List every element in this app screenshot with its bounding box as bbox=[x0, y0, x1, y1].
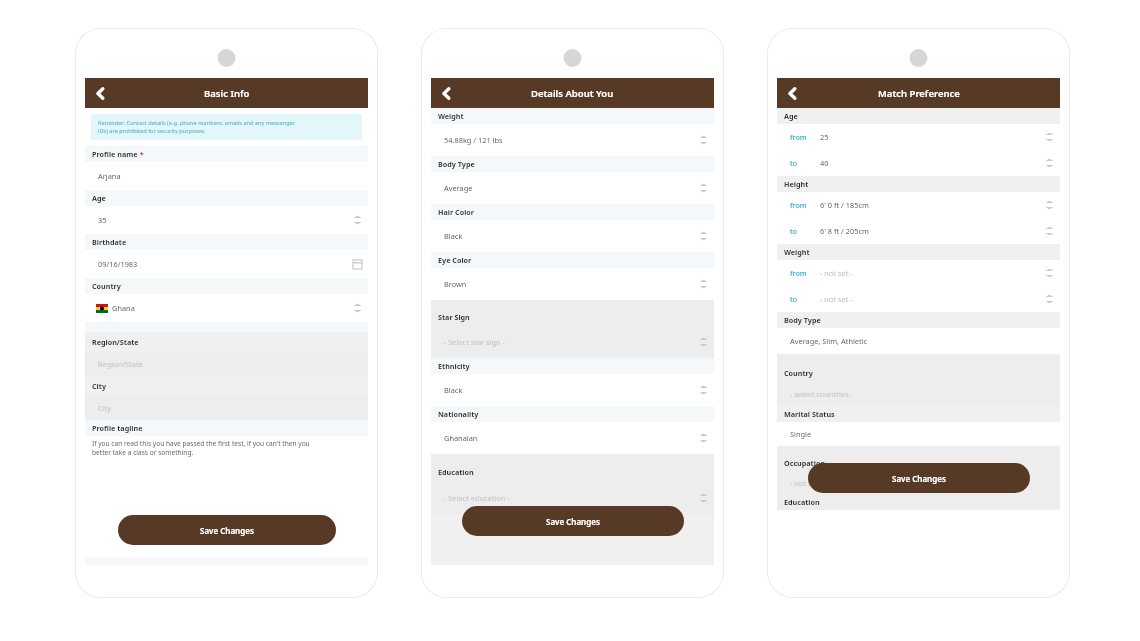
staticText: - Select star sign - bbox=[444, 337, 699, 347]
staticText: 25 bbox=[820, 132, 1045, 142]
staticText: Save Changes bbox=[892, 473, 946, 484]
staticText: Birthdate bbox=[92, 237, 127, 247]
staticText: - not set - bbox=[790, 478, 1054, 488]
staticText: City bbox=[92, 381, 106, 391]
staticText: Save Changes bbox=[546, 516, 600, 527]
button[interactable]: Back bbox=[85, 78, 115, 108]
staticText: Eye Color bbox=[438, 255, 472, 265]
staticText: Country bbox=[92, 281, 121, 291]
button[interactable]: Back bbox=[777, 78, 807, 108]
staticText: - not set - bbox=[820, 268, 1045, 278]
button[interactable]: - Select star sign - bbox=[431, 326, 714, 358]
button[interactable]: Ghana bbox=[85, 294, 368, 322]
staticText: Match Preference bbox=[878, 87, 960, 100]
button[interactable]: Save Changes bbox=[462, 506, 684, 536]
staticText: Arjana bbox=[98, 171, 362, 181]
staticText: Height bbox=[784, 179, 809, 189]
staticText: - Select education - bbox=[444, 493, 699, 503]
staticText: Ghana bbox=[112, 303, 353, 313]
staticText: Hair Color bbox=[438, 207, 474, 217]
staticText: - not set - bbox=[820, 294, 1045, 304]
staticText: to bbox=[790, 294, 820, 304]
staticText: 6' 0 ft / 185cm bbox=[820, 200, 1045, 210]
staticText: 40 bbox=[820, 158, 1045, 168]
staticText: Nationality bbox=[438, 409, 479, 419]
staticText: Basic Info bbox=[204, 87, 250, 100]
button[interactable]: Save Changes bbox=[808, 463, 1030, 493]
staticText: City bbox=[98, 403, 362, 413]
staticText: 09/16/1983 bbox=[98, 259, 353, 269]
button[interactable]: Save Changes bbox=[118, 515, 336, 545]
staticText: Average, Slim, Athletic bbox=[790, 336, 1054, 346]
button[interactable]: Region/State bbox=[85, 352, 368, 376]
staticText: Brown bbox=[444, 279, 699, 289]
staticText: iDs) are prohibited for security purpose… bbox=[98, 127, 206, 135]
staticText: Ethnicity bbox=[438, 361, 470, 371]
staticText: Black bbox=[444, 385, 699, 395]
button[interactable]: to bbox=[777, 218, 1060, 244]
button[interactable]: Single bbox=[777, 422, 1060, 446]
staticText: 54.88kg / 121 lbs bbox=[444, 135, 699, 145]
button[interactable]: Arjana bbox=[85, 162, 368, 190]
staticText: - select countries - bbox=[790, 389, 1054, 399]
staticText: Reminder: Contact details (e.g. phone nu… bbox=[98, 119, 296, 127]
staticText: 6' 8 ft / 205cm bbox=[820, 226, 1045, 236]
staticText: Age bbox=[784, 111, 798, 121]
staticText: Save Changes bbox=[200, 525, 254, 536]
staticText: Body Type bbox=[784, 315, 821, 325]
staticText: Star Sign bbox=[438, 312, 470, 322]
staticText: Education bbox=[438, 467, 474, 477]
staticText: from bbox=[790, 200, 820, 210]
staticText: Marital Status bbox=[784, 409, 835, 419]
button[interactable]: Ghanaian bbox=[431, 422, 714, 454]
staticText: Details About You bbox=[531, 87, 614, 100]
button[interactable]: 09/16/1983 bbox=[85, 250, 368, 278]
staticText: * bbox=[138, 149, 144, 159]
staticText: Occupation bbox=[784, 458, 826, 468]
staticText: from bbox=[790, 268, 820, 278]
staticText: Education bbox=[784, 497, 820, 507]
staticText: Weight bbox=[784, 247, 810, 257]
staticText: better take a class or something. bbox=[92, 448, 194, 457]
button[interactable]: Black bbox=[431, 220, 714, 252]
button[interactable]: to bbox=[777, 286, 1060, 312]
staticText: Ghanaian bbox=[444, 433, 699, 443]
button[interactable]: - select countries - bbox=[777, 382, 1060, 406]
staticText: Weight bbox=[438, 111, 464, 121]
button[interactable]: to bbox=[777, 150, 1060, 176]
staticText: Age bbox=[92, 193, 106, 203]
staticText: Body Type bbox=[438, 159, 475, 169]
staticText: to bbox=[790, 226, 820, 236]
staticText: If you can read this you have passed the… bbox=[92, 439, 310, 448]
staticText: Region/State bbox=[92, 337, 139, 347]
staticText: Region/State bbox=[98, 359, 362, 369]
button[interactable]: Brown bbox=[431, 268, 714, 300]
button[interactable]: 35 bbox=[85, 206, 368, 234]
button[interactable]: Average bbox=[431, 172, 714, 204]
button[interactable]: 54.88kg / 121 lbs bbox=[431, 124, 714, 156]
staticText: Country bbox=[784, 368, 813, 378]
staticText: to bbox=[790, 158, 820, 168]
staticText: Profile name bbox=[92, 149, 138, 159]
button[interactable]: from bbox=[777, 260, 1060, 286]
staticText: Black bbox=[444, 231, 699, 241]
button[interactable]: Black bbox=[431, 374, 714, 406]
staticText: Average bbox=[444, 183, 699, 193]
staticText: Profile tagline bbox=[92, 423, 143, 433]
staticText: Single bbox=[790, 429, 1054, 439]
button[interactable]: from bbox=[777, 192, 1060, 218]
button[interactable]: - Select education - bbox=[431, 482, 714, 514]
button[interactable]: Average, Slim, Athletic bbox=[777, 328, 1060, 354]
button[interactable]: from bbox=[777, 124, 1060, 150]
staticText: 35 bbox=[98, 215, 353, 225]
button[interactable]: Back bbox=[431, 78, 461, 108]
button[interactable]: - not set - bbox=[777, 472, 1060, 494]
staticText: from bbox=[790, 132, 820, 142]
